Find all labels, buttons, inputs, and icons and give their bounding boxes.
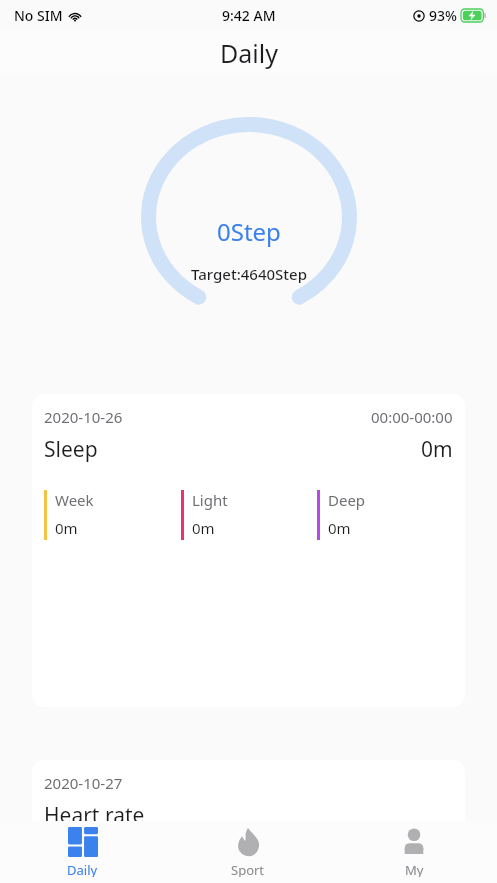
button[interactable]: Sport xyxy=(165,821,331,883)
staticText: Target:4640Step xyxy=(191,264,307,284)
staticText: 93% xyxy=(429,6,457,25)
staticText: My xyxy=(405,861,424,877)
staticText: Daily xyxy=(67,861,98,877)
button[interactable]: 2020-10-26 xyxy=(32,394,465,707)
staticText: 00:00-00:00 xyxy=(371,407,453,427)
staticText: 0m xyxy=(421,435,453,464)
other: Sport xyxy=(233,827,263,857)
button[interactable]: My xyxy=(331,821,497,883)
staticText: Daily xyxy=(220,36,278,70)
staticText: 0m xyxy=(55,518,78,538)
staticText: 0Step xyxy=(217,215,281,248)
other: My xyxy=(399,827,429,857)
staticText: Week xyxy=(55,490,94,510)
button[interactable]: 2020-10-27 xyxy=(32,760,465,883)
staticText: Deep xyxy=(328,490,366,510)
staticText: 2020-10-26 xyxy=(44,407,123,427)
staticText: 2020-10-27 xyxy=(44,773,123,793)
staticText: No SIM xyxy=(14,6,63,25)
button[interactable]: 0Step xyxy=(141,117,357,317)
staticText: Sport xyxy=(231,861,265,877)
staticText: 0m xyxy=(328,518,351,538)
staticText: Sleep xyxy=(44,435,98,464)
staticText: 易享助手 · BEDSHZJZ.COM xyxy=(135,839,363,865)
staticText: Light xyxy=(192,490,228,510)
staticText: 9:42 AM xyxy=(222,6,276,25)
button[interactable]: Daily xyxy=(0,821,165,883)
staticText: 0m xyxy=(192,518,215,538)
other: Daily xyxy=(68,827,98,857)
staticText: Heart rate xyxy=(44,801,145,830)
